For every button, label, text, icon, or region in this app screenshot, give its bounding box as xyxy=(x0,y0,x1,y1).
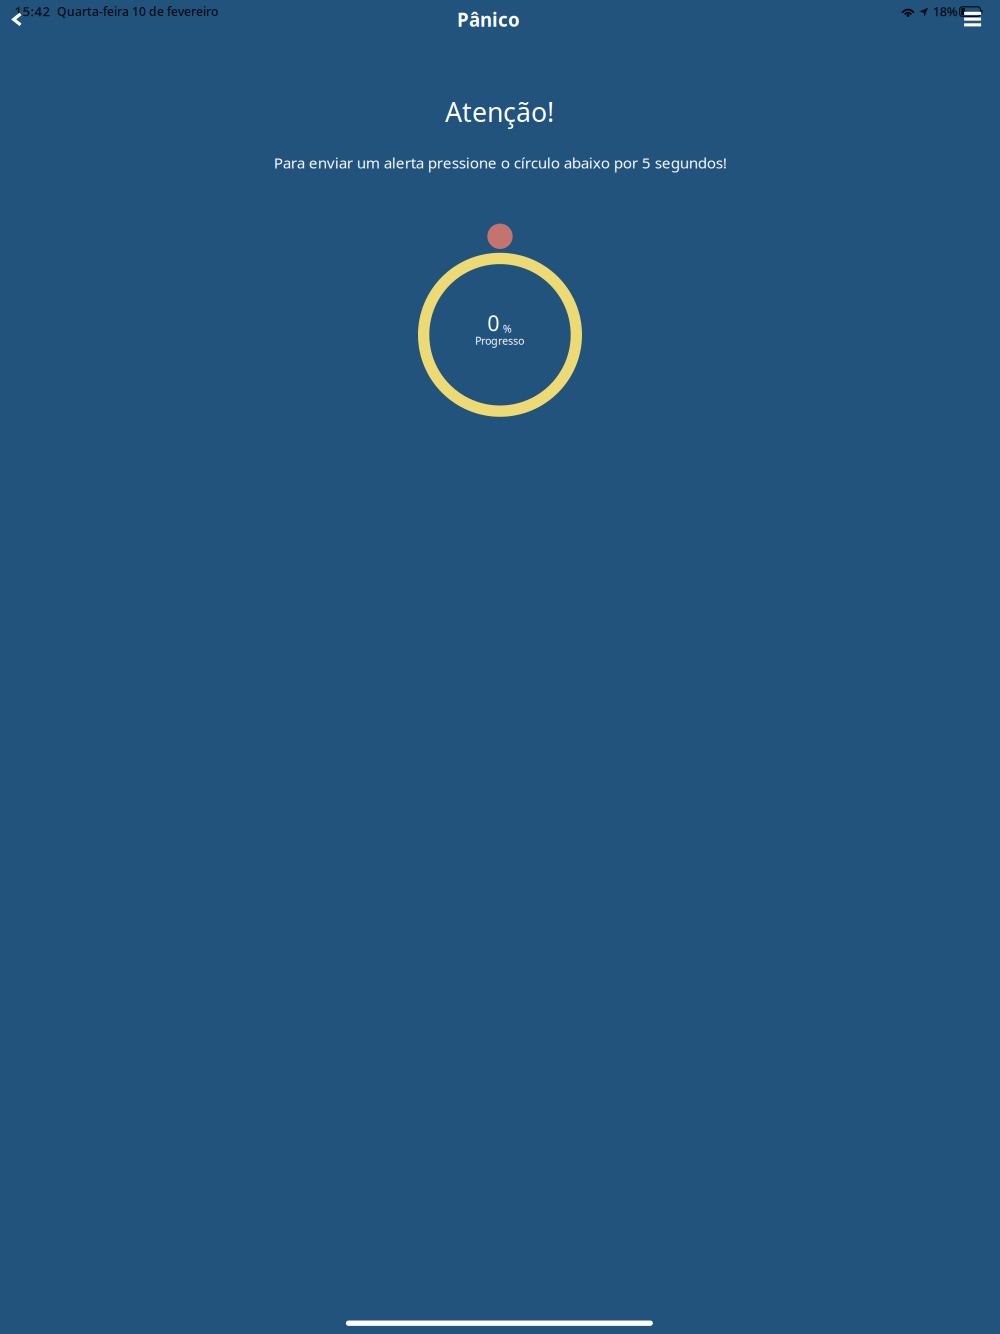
button[interactable]: Menu xyxy=(956,0,990,38)
staticText: Progresso xyxy=(475,334,524,348)
staticText: Atenção! xyxy=(445,93,554,130)
staticText: 18% xyxy=(933,2,958,20)
staticText: Pânico xyxy=(457,7,520,32)
staticText: 15:42 xyxy=(15,2,51,20)
staticText: % xyxy=(503,321,512,336)
staticText: Quarta-feira 10 de fevereiro xyxy=(57,3,218,19)
button[interactable]: Voltar xyxy=(0,0,34,38)
staticText: Para enviar um alerta pressione o círcul… xyxy=(274,152,727,173)
button[interactable]: Enviar alerta de pânico xyxy=(418,224,582,417)
staticText: 0 xyxy=(487,309,499,337)
